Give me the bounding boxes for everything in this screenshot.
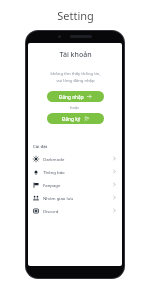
staticText: Đăng ký <box>62 116 81 122</box>
other: Darkmode <box>33 156 39 162</box>
button[interactable]: Đăng ký <box>47 113 104 124</box>
staticText: không tìm thấy thông tin, <box>50 71 101 77</box>
staticText: Discord <box>43 208 59 214</box>
button[interactable]: Đăng nhập <box>47 91 104 102</box>
button[interactable]: Fanpage <box>28 178 122 191</box>
staticText: Thông báo <box>43 169 65 175</box>
button[interactable]: Thông báo <box>28 165 122 178</box>
staticText: hoặc <box>70 105 80 110</box>
staticText: vui lòng đăng nhập <box>56 78 95 84</box>
other: Nhóm giao lưu <box>33 195 39 201</box>
staticText: Fanpage <box>43 182 61 188</box>
staticText: Darkmode <box>43 156 65 162</box>
button[interactable]: Discord <box>28 204 122 217</box>
other: Fanpage <box>33 182 39 188</box>
button[interactable]: Darkmode <box>28 152 122 165</box>
other: Thông báo <box>33 169 39 175</box>
staticText: Tài khoản <box>59 50 92 60</box>
staticText: Nhóm giao lưu <box>43 195 74 201</box>
staticText: Cài đặt <box>33 143 48 149</box>
staticText: Setting <box>57 8 94 23</box>
staticText: Đăng nhập <box>59 94 84 100</box>
button[interactable]: Nhóm giao lưu <box>28 191 122 204</box>
other: Discord <box>33 208 39 214</box>
